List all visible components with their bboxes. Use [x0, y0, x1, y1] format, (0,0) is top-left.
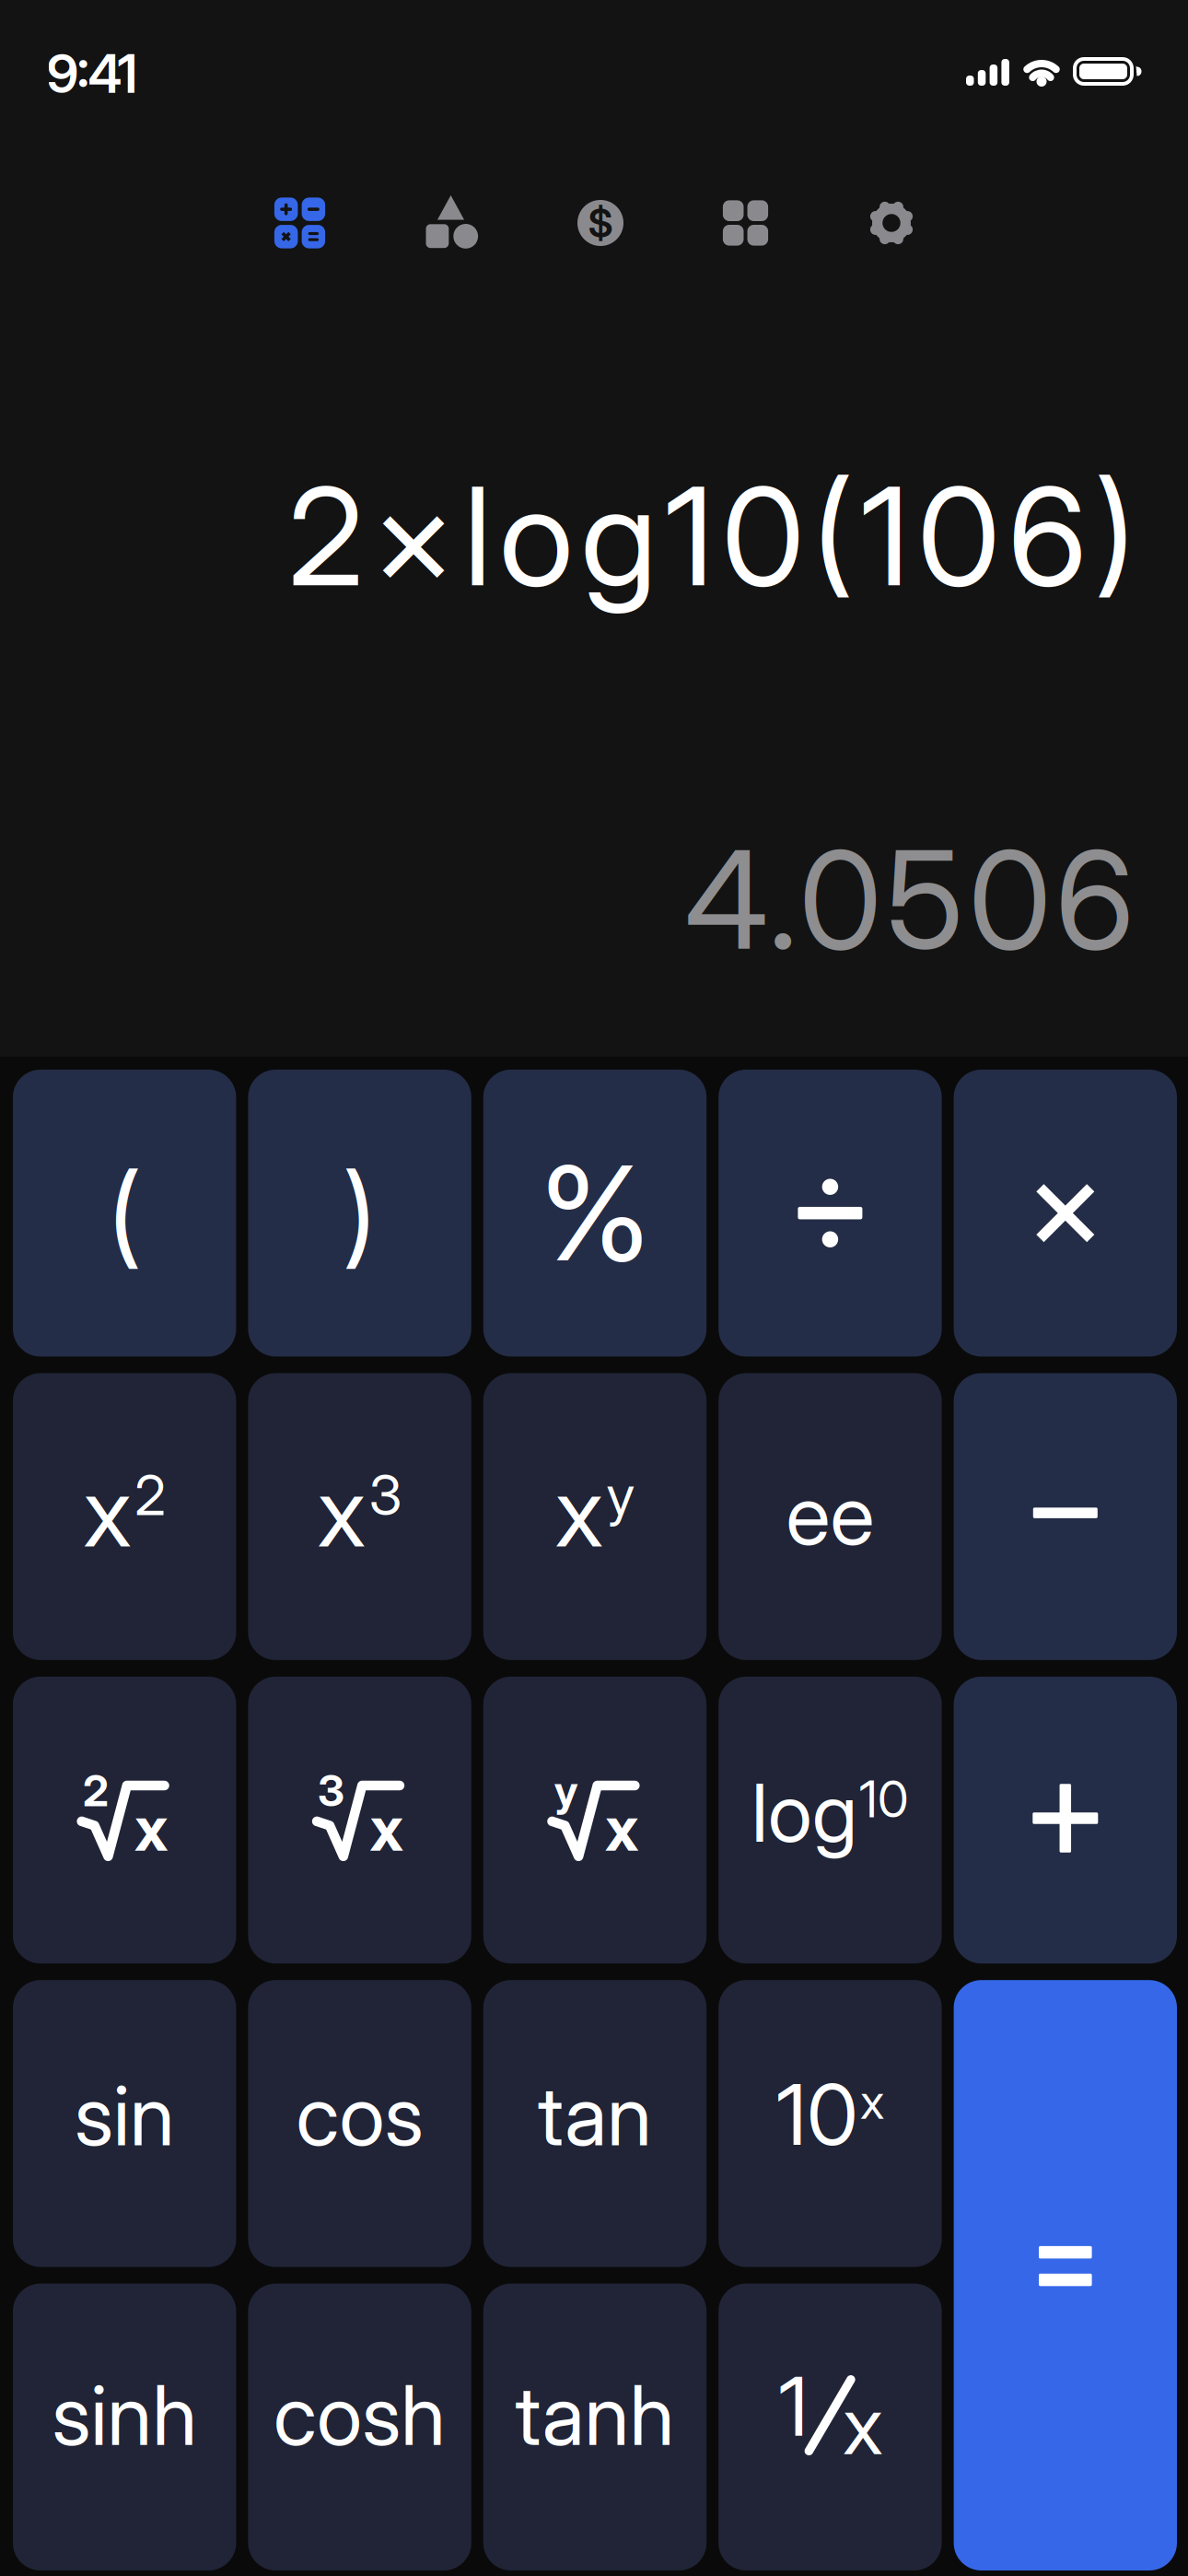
staticText: $ [588, 199, 613, 247]
staticText: ee [786, 1465, 874, 1565]
button[interactable]: sinh [13, 2284, 236, 2570]
staticText: tanh [515, 2365, 675, 2465]
staticText: log [751, 1764, 857, 1861]
button[interactable]: 2 [13, 1677, 236, 1964]
staticText: 4.0506 [685, 818, 1135, 981]
button[interactable]: More [723, 190, 768, 256]
button[interactable]: Equals [954, 1980, 1177, 2570]
button[interactable]: x [248, 1373, 471, 1660]
staticText: x [83, 1454, 132, 1569]
button[interactable]: y [483, 1677, 707, 1964]
staticText: x [370, 1790, 404, 1866]
staticText: 3 [369, 1461, 402, 1528]
staticText: 3 [318, 1765, 344, 1817]
button[interactable]: log [719, 1677, 942, 1964]
staticText: x [555, 1454, 604, 1569]
button[interactable]: Calculator [273, 190, 327, 256]
button[interactable]: Add [954, 1677, 1177, 1964]
staticText: ( [108, 1146, 141, 1280]
staticText: % [540, 1134, 650, 1292]
staticText: x [843, 2377, 883, 2474]
staticText: cos [296, 2065, 423, 2165]
staticText: x [317, 1454, 366, 1569]
staticText: ) [343, 1146, 376, 1280]
button[interactable]: x [13, 1373, 236, 1660]
button[interactable]: 1 [719, 2284, 942, 2570]
button[interactable]: tan [483, 1980, 707, 2267]
button[interactable]: Currency [577, 190, 623, 256]
button[interactable]: Multiply [954, 1070, 1177, 1357]
button[interactable]: x [483, 1373, 707, 1660]
staticText: x [135, 1790, 169, 1866]
button[interactable]: % [483, 1070, 707, 1357]
button[interactable]: ) [248, 1070, 471, 1357]
staticText: x [860, 2072, 884, 2130]
button[interactable]: 10 [719, 1980, 942, 2267]
button[interactable]: Divide [719, 1070, 942, 1357]
staticText: y [606, 1461, 635, 1528]
button[interactable]: Subtract [954, 1373, 1177, 1660]
staticText: sinh [52, 2365, 197, 2465]
button[interactable]: cosh [248, 2284, 471, 2570]
button[interactable]: cos [248, 1980, 471, 2267]
button[interactable]: 3 [248, 1677, 471, 1964]
staticText: tan [538, 2065, 652, 2165]
button[interactable]: sin [13, 1980, 236, 2267]
button[interactable]: ee [719, 1373, 942, 1660]
button[interactable]: Settings [868, 190, 915, 256]
staticText: 2×log10(106) [288, 454, 1136, 618]
staticText: 2 [83, 1765, 109, 1817]
button[interactable]: tanh [483, 2284, 707, 2570]
staticText: cosh [274, 2365, 446, 2465]
staticText: 10 [776, 2064, 858, 2165]
staticText: 1 [779, 2357, 808, 2455]
staticText: 2 [135, 1461, 166, 1528]
staticText: y [554, 1765, 578, 1817]
staticText: 10 [859, 1768, 909, 1829]
staticText: x [605, 1790, 639, 1866]
staticText: 9:41 [47, 42, 138, 106]
staticText: sin [74, 2065, 175, 2165]
button[interactable]: Geometry [426, 190, 478, 256]
button[interactable]: ( [13, 1070, 236, 1357]
